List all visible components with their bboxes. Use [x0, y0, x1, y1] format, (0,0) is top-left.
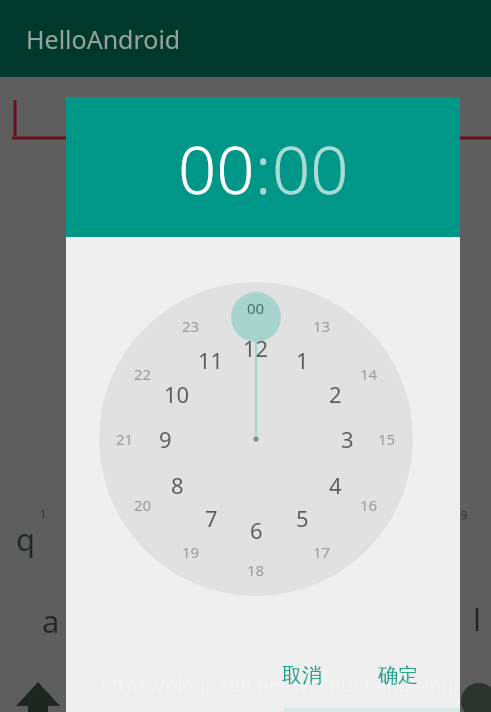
button[interactable]: 取消 — [274, 657, 330, 694]
staticText: 22 — [134, 364, 152, 384]
staticText: 11 — [198, 345, 224, 375]
staticText: 12 — [243, 333, 269, 363]
button[interactable]: 20 — [127, 491, 159, 519]
button[interactable]: 7 — [194, 501, 228, 535]
staticText: 1 — [296, 345, 309, 375]
button[interactable]: 10 — [160, 377, 194, 411]
staticText: 14 — [360, 364, 378, 384]
button[interactable]: 12 — [239, 331, 273, 365]
staticText: 8 — [171, 470, 184, 500]
button[interactable]: 14 — [353, 360, 385, 388]
staticText: 9 — [159, 424, 172, 454]
staticText: 5 — [296, 503, 309, 533]
staticText: 1 — [40, 506, 47, 521]
button[interactable]: 8 — [160, 468, 194, 502]
staticText: 2 — [329, 379, 342, 409]
staticText: https://blog.csdn.net/wochunhangsang — [100, 672, 454, 698]
button[interactable]: 1 — [285, 343, 319, 377]
button[interactable]: 21 — [109, 425, 141, 453]
button[interactable]: 18 — [240, 556, 272, 584]
staticText: 18 — [247, 560, 265, 580]
button[interactable]: 00 — [272, 122, 349, 213]
staticText: 20 — [134, 495, 152, 515]
staticText: 10 — [164, 379, 190, 409]
button[interactable]: 确定 — [370, 657, 426, 694]
button[interactable]: 17 — [306, 538, 338, 566]
button[interactable]: 3 — [330, 422, 364, 456]
staticText: 确定 — [378, 663, 418, 688]
button[interactable]: 22 — [127, 360, 159, 388]
staticText: l — [473, 598, 481, 640]
staticText: 21 — [116, 429, 134, 449]
staticText: 19 — [182, 542, 200, 562]
staticText: 6 — [250, 515, 263, 545]
button[interactable]: 19 — [175, 538, 207, 566]
staticText: a — [42, 600, 60, 642]
staticText: HelloAndroid — [26, 22, 181, 56]
staticText: 13 — [313, 316, 331, 336]
button[interactable]: 23 — [175, 312, 207, 340]
button[interactable]: 4 — [318, 468, 352, 502]
button[interactable]: 11 — [194, 343, 228, 377]
staticText: 15 — [378, 429, 396, 449]
staticText: 00 — [178, 122, 255, 213]
staticText: 7 — [205, 503, 218, 533]
staticText: 3 — [341, 424, 354, 454]
staticText: : — [255, 122, 272, 213]
button[interactable]: 2 — [318, 377, 352, 411]
button[interactable]: 5 — [285, 501, 319, 535]
button[interactable]: 13 — [306, 312, 338, 340]
staticText: 9 — [461, 507, 468, 522]
staticText: 4 — [329, 470, 342, 500]
staticText: 16 — [360, 495, 378, 515]
button[interactable]: 6 — [239, 513, 273, 547]
button[interactable]: 15 — [371, 425, 403, 453]
button[interactable]: 00 — [240, 294, 272, 322]
staticText: q — [16, 518, 36, 560]
staticText: 00 — [247, 298, 265, 318]
staticText: 取消 — [282, 663, 322, 688]
staticText: 17 — [313, 542, 331, 562]
staticText: 00 — [272, 122, 349, 213]
button[interactable]: 16 — [353, 491, 385, 519]
button[interactable]: 00 — [178, 122, 255, 213]
button[interactable]: 24 hour clock face — [99, 282, 413, 596]
staticText: 23 — [182, 316, 200, 336]
button[interactable]: 9 — [148, 422, 182, 456]
